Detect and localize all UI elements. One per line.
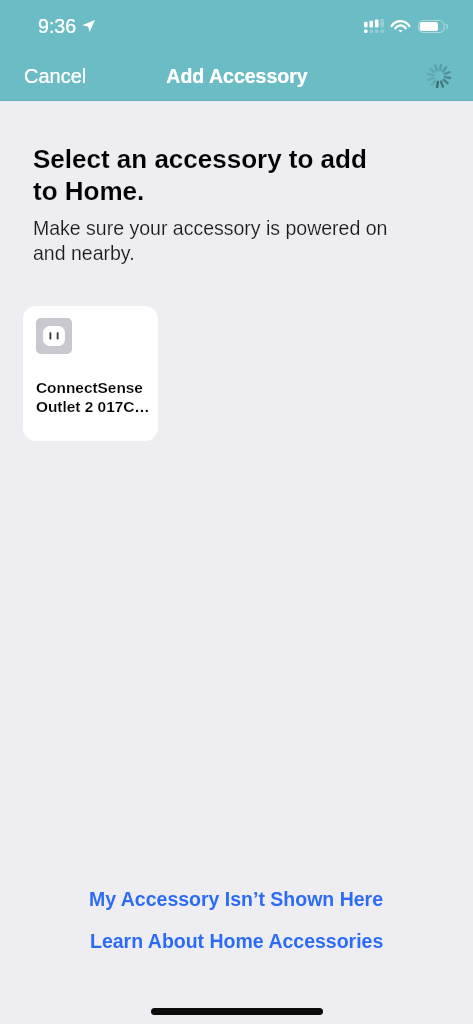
button[interactable]: My Accessory Isn’t Shown Here	[79, 886, 394, 912]
button[interactable]: Cancel	[0, 53, 101, 98]
button[interactable]: Learn About Home Accessories	[80, 928, 394, 954]
button[interactable]: ConnectSense Outlet 2 017C…	[23, 306, 158, 441]
staticText: Cancel	[24, 65, 87, 87]
staticText: 9:36	[38, 15, 77, 37]
staticText: Add Accessory	[166, 65, 308, 87]
staticText: Make sure your accessory is powered on a…	[33, 217, 388, 264]
other: Loading	[427, 64, 451, 88]
staticText: ConnectSense Outlet 2 017C…	[36, 379, 152, 415]
staticText: Select an accessory to add to Home.	[33, 144, 367, 205]
staticText: My Accessory Isn’t Shown Here	[89, 888, 384, 910]
staticText: Learn About Home Accessories	[90, 930, 384, 952]
